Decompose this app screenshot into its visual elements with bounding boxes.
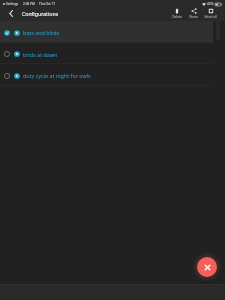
staticText: Settings bbox=[6, 2, 19, 6]
button[interactable]: duty cycle at night for owls bbox=[0, 64, 213, 85]
button[interactable]: Share bbox=[185, 8, 202, 19]
button[interactable]: Select all bbox=[202, 8, 219, 19]
staticText: duty cycle at night for owls bbox=[23, 72, 91, 79]
button[interactable]: bats and birds bbox=[0, 21, 213, 42]
staticText: bats and birds bbox=[23, 29, 60, 36]
staticText: 42% bbox=[207, 2, 214, 6]
staticText: Share bbox=[189, 15, 198, 19]
staticText: Delete bbox=[172, 15, 182, 19]
button[interactable]: Close bbox=[197, 257, 217, 277]
button[interactable]: birds at dawn bbox=[0, 43, 213, 63]
staticText: 2:06 PM bbox=[23, 2, 35, 6]
button[interactable]: Back bbox=[0, 8, 21, 19]
button[interactable]: Delete bbox=[168, 8, 185, 19]
staticText: Select all bbox=[204, 15, 217, 19]
staticText: Configurations bbox=[22, 10, 59, 17]
staticText: Thu Oct 17 bbox=[39, 2, 56, 6]
staticText: birds at dawn bbox=[23, 51, 58, 58]
